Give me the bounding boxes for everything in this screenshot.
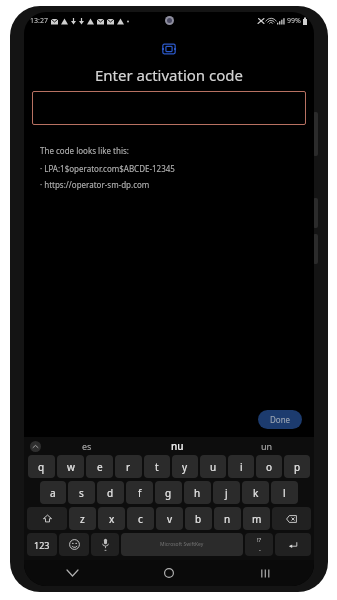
button[interactable]: Shift <box>27 507 67 530</box>
button[interactable]: a <box>40 481 66 504</box>
staticText: . <box>259 544 261 554</box>
staticText: x <box>109 512 115 526</box>
staticText: h <box>194 486 201 500</box>
staticText: u <box>210 460 217 474</box>
button[interactable]: n <box>214 507 241 530</box>
button[interactable]: Recent apps <box>217 560 314 586</box>
staticText: t <box>155 460 159 474</box>
button[interactable]: Microsoft SwiftKey <box>121 533 243 556</box>
button[interactable]: h <box>184 481 211 504</box>
button[interactable]: q <box>28 455 55 478</box>
staticText: n <box>224 512 231 526</box>
button[interactable]: Punctuation <box>245 533 273 556</box>
button[interactable]: b <box>185 507 212 530</box>
staticText: Done <box>270 414 291 425</box>
staticText: e <box>97 460 103 474</box>
button[interactable]: nu <box>132 437 222 455</box>
button[interactable]: y <box>172 455 198 478</box>
staticText: m <box>252 512 262 526</box>
button[interactable]: Emoji <box>59 533 89 556</box>
staticText: p <box>294 460 301 474</box>
button[interactable]: e <box>86 455 113 478</box>
staticText: 13:27 <box>30 16 48 26</box>
staticText: v <box>167 512 173 526</box>
button[interactable]: v <box>156 507 183 530</box>
button[interactable]: j <box>213 481 240 504</box>
staticText: c <box>138 512 143 526</box>
staticText: z <box>80 512 85 526</box>
button[interactable]: s <box>68 481 95 504</box>
staticText: r <box>126 460 131 474</box>
button[interactable]: l <box>271 481 298 504</box>
button[interactable]: Voice input <box>91 533 119 556</box>
staticText: es <box>82 440 92 452</box>
staticText: The code looks like this: <box>40 145 129 156</box>
button[interactable]: Backspace <box>272 507 311 530</box>
staticText: !? <box>257 536 262 544</box>
button[interactable]: g <box>155 481 182 504</box>
staticText: nu <box>171 439 184 453</box>
staticText: g <box>165 486 172 500</box>
button[interactable]: x <box>98 507 125 530</box>
button[interactable]: u <box>200 455 226 478</box>
staticText: b <box>195 512 202 526</box>
staticText: · LPA:1$operator.com$ABCDE-12345 <box>40 163 175 174</box>
button[interactable]: k <box>242 481 269 504</box>
staticText: w <box>67 460 75 474</box>
button[interactable]: Hide keyboard <box>24 560 120 586</box>
button[interactable]: Expand suggestions <box>30 441 41 452</box>
button[interactable]: c <box>127 507 154 530</box>
button[interactable]: z <box>69 507 96 530</box>
button[interactable]: f <box>126 481 153 504</box>
staticText: s <box>79 486 84 500</box>
button[interactable]: p <box>284 455 310 478</box>
staticText: 99% <box>287 16 301 26</box>
button[interactable]: i <box>228 455 254 478</box>
staticText: j <box>225 486 228 500</box>
button[interactable]: m <box>243 507 270 530</box>
staticText: Microsoft SwiftKey <box>160 541 204 548</box>
staticText: i <box>240 460 243 474</box>
staticText: q <box>38 460 45 474</box>
button[interactable]: Home <box>120 560 217 586</box>
button[interactable]: d <box>97 481 124 504</box>
button[interactable]: Done <box>258 410 302 429</box>
staticText: o <box>266 460 273 474</box>
staticText: k <box>253 486 259 500</box>
staticText: f <box>138 486 142 500</box>
staticText: a <box>50 486 56 500</box>
button[interactable]: o <box>256 455 282 478</box>
staticText: y <box>182 460 188 474</box>
button[interactable]: Enter <box>275 533 311 556</box>
staticText: Enter activation code <box>24 65 314 85</box>
button[interactable]: un <box>222 437 312 455</box>
staticText: l <box>283 486 286 500</box>
button[interactable]: t <box>144 455 170 478</box>
button[interactable] <box>32 91 306 125</box>
button[interactable]: es <box>41 437 132 455</box>
staticText: un <box>261 440 273 452</box>
staticText: 123 <box>34 539 50 551</box>
staticText: · https://operator-sm-dp.com <box>40 179 150 190</box>
button[interactable]: r <box>115 455 142 478</box>
button[interactable]: w <box>57 455 84 478</box>
button[interactable]: Numbers <box>27 533 57 556</box>
staticText: d <box>107 486 114 500</box>
